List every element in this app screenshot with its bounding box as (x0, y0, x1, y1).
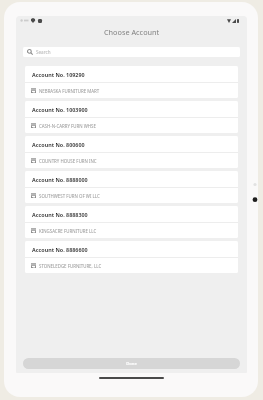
button[interactable]: Account No. 8888000 (25, 171, 238, 203)
staticText: Account No. 8888000 (32, 176, 88, 183)
staticText: Search (36, 49, 51, 55)
button[interactable]: Account No. 8888300 (25, 206, 238, 238)
staticText: Account No. 1003900 (32, 106, 88, 113)
staticText: NEBRASKA FURNITURE MART (39, 88, 100, 94)
button[interactable]: Account No. 8886600 (25, 241, 238, 273)
button[interactable]: Account No. 800600 (25, 136, 238, 168)
staticText: KINGSACRE FURNITURE LLC (39, 228, 97, 234)
staticText: Account No. 109290 (32, 71, 85, 78)
button[interactable]: Search accounts (23, 47, 240, 57)
button[interactable]: Done (23, 358, 240, 369)
staticText: Done (126, 361, 137, 367)
staticText: STONELEDGE FURNITURE, LLC (39, 263, 102, 269)
button[interactable]: Account No. 109290 (25, 66, 238, 98)
staticText: SOUTHWEST FURN OF WI LLC (39, 193, 100, 199)
staticText: CASH-N-CARRY FURN WHSE (39, 123, 96, 129)
staticText: COUNTRY HOUSE FURN INC (39, 158, 97, 164)
staticText: Choose Account (104, 27, 160, 37)
staticText: Account No. 8886600 (32, 246, 88, 253)
staticText: Account No. 800600 (32, 141, 85, 148)
staticText: Account No. 8888300 (32, 211, 88, 218)
button[interactable]: Account No. 1003900 (25, 101, 238, 133)
